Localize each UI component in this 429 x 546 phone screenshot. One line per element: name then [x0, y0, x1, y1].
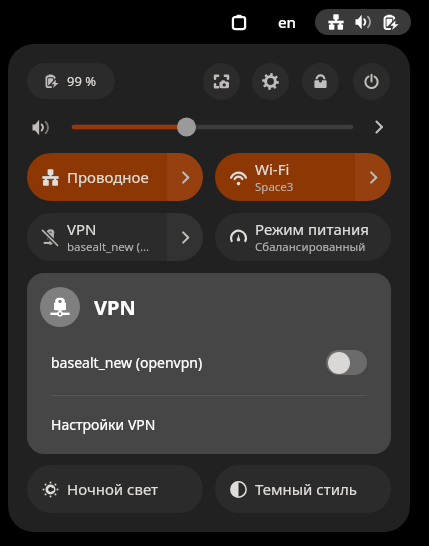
button[interactable]: Power off: [353, 63, 390, 100]
button[interactable]: System status: [315, 9, 411, 35]
button[interactable]: VPN settings: [167, 213, 203, 261]
button[interactable]: Screenshot: [203, 63, 240, 100]
button[interactable]: Настройки VPN: [51, 412, 367, 436]
staticText: basealt_new (…: [67, 239, 150, 255]
button[interactable]: Режим питания: [215, 213, 391, 261]
button[interactable]: 99 %: [27, 63, 115, 99]
button[interactable]: Проводное settings: [167, 153, 203, 201]
staticText: VPN: [67, 219, 97, 239]
button[interactable]: Lock screen: [302, 63, 339, 100]
staticText: Сбалансированный: [255, 239, 366, 255]
staticText: Space3: [255, 179, 294, 195]
button[interactable]: Wi-Fi: [215, 153, 355, 201]
staticText: Ночной свет: [67, 479, 159, 499]
button[interactable]: Wi-Fi settings: [355, 153, 391, 201]
staticText: VPN: [94, 294, 136, 321]
button[interactable]: Clipboard: [225, 8, 253, 36]
button[interactable]: Volume: [69, 116, 356, 138]
button[interactable]: en: [272, 8, 302, 36]
staticText: Проводное: [67, 167, 149, 187]
button[interactable]: Sound settings: [367, 115, 391, 139]
button[interactable]: Settings: [252, 63, 289, 100]
staticText: en: [278, 12, 297, 32]
staticText: basealt_new (openvpn): [51, 353, 203, 372]
button[interactable]: VPN: [27, 213, 167, 261]
staticText: 99 %: [67, 72, 97, 90]
button[interactable]: Темный стиль: [215, 465, 391, 513]
staticText: Режим питания: [255, 219, 369, 239]
staticText: Wi-Fi: [255, 159, 290, 179]
staticText: Настройки VPN: [51, 415, 156, 434]
staticText: Темный стиль: [255, 479, 358, 499]
button[interactable]: VPN connection toggle: [326, 350, 367, 375]
button[interactable]: Проводное: [27, 153, 167, 201]
button[interactable]: Ночной свет: [27, 465, 203, 513]
